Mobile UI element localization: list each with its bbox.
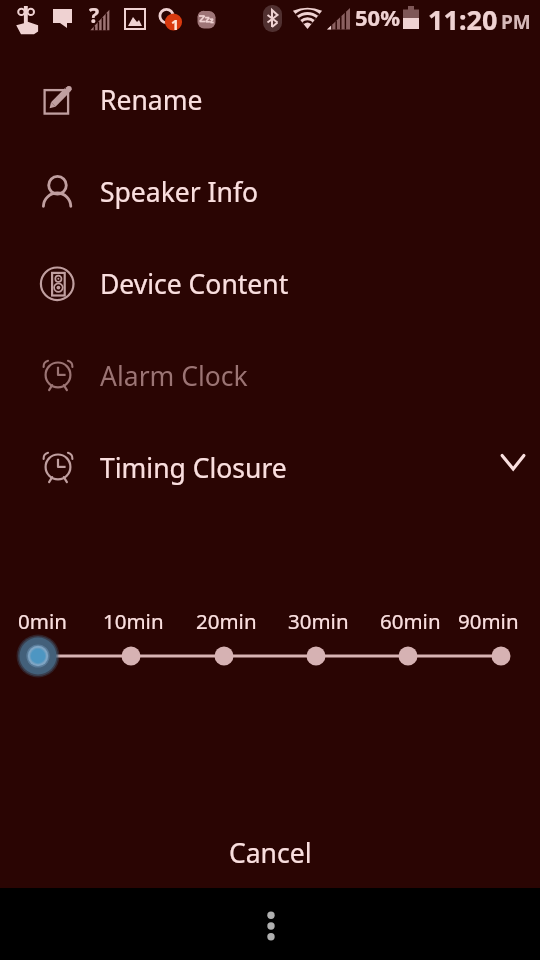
staticText: Rename bbox=[100, 82, 203, 118]
staticText: 0min bbox=[18, 607, 67, 630]
staticText: 10min bbox=[103, 607, 164, 630]
staticText: ? bbox=[89, 1, 100, 30]
staticText: 20min bbox=[196, 607, 257, 630]
staticText: Timing Closure bbox=[100, 450, 287, 486]
button[interactable]: Rename bbox=[0, 54, 540, 146]
button[interactable]: Alarm Clock bbox=[0, 330, 540, 422]
button[interactable]: Speaker Info bbox=[0, 146, 540, 238]
button[interactable]: Timing Closure bbox=[0, 422, 540, 514]
button[interactable]: More options bbox=[240, 894, 300, 954]
staticText: Alarm Clock bbox=[100, 358, 248, 394]
staticText: 60min bbox=[380, 607, 441, 630]
staticText: 90min bbox=[458, 607, 519, 630]
staticText: Speaker Info bbox=[100, 174, 259, 210]
staticText: 11:20 bbox=[428, 1, 498, 38]
staticText: 30min bbox=[288, 607, 349, 630]
button[interactable]: Cancel bbox=[0, 786, 540, 888]
staticText: 1 bbox=[171, 15, 180, 34]
staticText: Cancel bbox=[229, 835, 312, 871]
staticText: 50% bbox=[355, 2, 401, 32]
button[interactable]: Expand bbox=[476, 436, 540, 500]
button[interactable]: Device Content bbox=[0, 238, 540, 330]
staticText: PM bbox=[501, 9, 531, 35]
staticText: Device Content bbox=[100, 266, 289, 302]
